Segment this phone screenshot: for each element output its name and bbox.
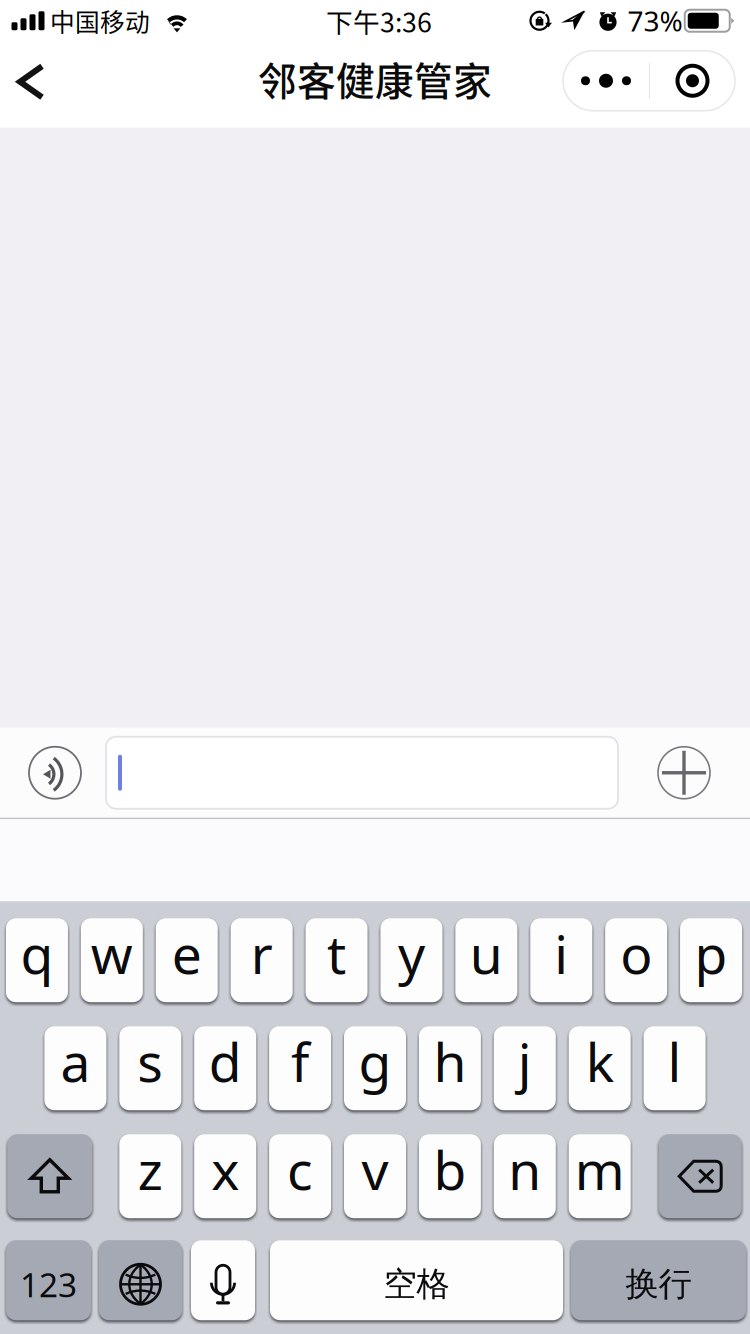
button[interactable] — [106, 734, 618, 812]
staticText: j — [518, 1026, 532, 1097]
staticText: q — [20, 918, 53, 989]
staticText: p — [694, 918, 727, 989]
button[interactable]: h — [419, 1026, 481, 1110]
button[interactable]: s — [119, 1026, 181, 1110]
button[interactable]: v — [344, 1134, 406, 1218]
button[interactable]: d — [194, 1026, 256, 1110]
button[interactable]: Delete — [659, 1134, 742, 1218]
staticText: 73% — [627, 2, 682, 39]
button[interactable]: Close — [650, 51, 735, 111]
staticText: v — [361, 1134, 388, 1205]
button[interactable]: r — [231, 918, 293, 1002]
staticText: h — [433, 1026, 466, 1097]
button[interactable]: Back — [0, 46, 62, 118]
button[interactable]: e — [156, 918, 218, 1002]
staticText: d — [209, 1026, 242, 1097]
staticText: 邻客健康管家 — [258, 51, 492, 107]
staticText: i — [554, 918, 568, 989]
button[interactable]: t — [306, 918, 368, 1002]
staticText: z — [138, 1134, 163, 1205]
staticText: a — [60, 1026, 90, 1097]
button[interactable]: k — [569, 1026, 631, 1110]
button[interactable]: l — [644, 1026, 706, 1110]
staticText: 空格 — [383, 1264, 449, 1305]
staticText: 换行 — [625, 1264, 691, 1305]
button[interactable]: c — [269, 1134, 331, 1218]
staticText: g — [358, 1026, 391, 1097]
button[interactable]: Next keyboard — [99, 1240, 182, 1320]
staticText: 下午3:36 — [326, 1, 432, 40]
button[interactable]: z — [119, 1134, 181, 1218]
button[interactable]: o — [605, 918, 667, 1002]
staticText: e — [172, 918, 202, 989]
button[interactable]: p — [680, 918, 742, 1002]
button[interactable]: b — [419, 1134, 481, 1218]
button[interactable]: 换行 — [571, 1240, 746, 1320]
staticText: s — [137, 1026, 163, 1097]
button[interactable]: y — [380, 918, 442, 1002]
button[interactable]: g — [344, 1026, 406, 1110]
button[interactable]: 空格 — [270, 1240, 563, 1320]
staticText: n — [508, 1134, 541, 1205]
staticText: t — [327, 918, 346, 989]
button[interactable]: More actions — [650, 734, 718, 812]
button[interactable]: Voice input — [21, 734, 89, 812]
staticText: c — [287, 1134, 313, 1205]
button[interactable]: q — [6, 918, 68, 1002]
staticText: x — [211, 1134, 239, 1205]
button[interactable]: i — [530, 918, 592, 1002]
button[interactable]: f — [269, 1026, 331, 1110]
button[interactable]: 123 — [6, 1240, 91, 1320]
staticText: 123 — [20, 1262, 77, 1306]
staticText: k — [586, 1026, 614, 1097]
staticText: l — [668, 1026, 682, 1097]
button[interactable]: Dictation — [191, 1240, 255, 1320]
button[interactable]: More — [563, 51, 649, 111]
staticText: u — [470, 918, 503, 989]
staticText: b — [433, 1134, 466, 1205]
staticText: w — [91, 918, 133, 989]
staticText: f — [291, 1026, 309, 1097]
button[interactable]: x — [194, 1134, 256, 1218]
button[interactable]: m — [569, 1134, 631, 1218]
button[interactable]: n — [494, 1134, 556, 1218]
staticText: r — [251, 918, 273, 989]
button[interactable]: w — [81, 918, 143, 1002]
button[interactable]: a — [44, 1026, 106, 1110]
staticText: 中国移动 — [50, 3, 150, 39]
staticText: m — [575, 1134, 625, 1205]
button[interactable]: Shift — [7, 1134, 92, 1218]
staticText: o — [620, 918, 652, 989]
button[interactable]: j — [494, 1026, 556, 1110]
staticText: y — [398, 918, 425, 989]
button[interactable]: u — [455, 918, 517, 1002]
